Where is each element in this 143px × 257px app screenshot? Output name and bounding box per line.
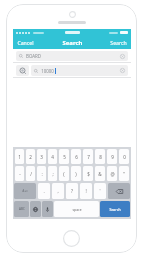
- button[interactable]: !: [80, 183, 92, 199]
- button[interactable]: 4: [48, 149, 57, 164]
- button[interactable]: &: [95, 166, 105, 181]
- button[interactable]: ABC: [14, 201, 29, 217]
- button[interactable]: ?: [66, 183, 78, 199]
- staticText: (: [63, 171, 65, 177]
- staticText: ': [99, 188, 101, 194]
- button[interactable]: ': [94, 183, 106, 199]
- button[interactable]: .: [38, 183, 50, 199]
- button[interactable]: ": [119, 166, 129, 181]
- button[interactable]: (: [59, 166, 69, 181]
- button[interactable]: ): [71, 166, 81, 181]
- staticText: !: [85, 188, 87, 194]
- button[interactable]: 2: [26, 149, 35, 164]
- staticText: 8: [99, 154, 102, 160]
- button[interactable]: Voice input: [42, 201, 53, 217]
- staticText: .: [43, 188, 45, 194]
- button[interactable]: Delete: [108, 183, 130, 199]
- staticText: $: [87, 171, 90, 177]
- staticText: 4: [51, 154, 54, 160]
- button[interactable]: 3: [37, 149, 46, 164]
- staticText: ?: [71, 188, 73, 194]
- staticText: 6: [75, 154, 78, 160]
- staticText: #+=: [22, 189, 28, 193]
- staticText: 0: [123, 154, 126, 160]
- button[interactable]: ,: [52, 183, 64, 199]
- button[interactable]: @: [107, 166, 117, 181]
- staticText: ": [123, 171, 125, 177]
- button[interactable]: Cancel: [17, 36, 34, 49]
- staticText: ;: [52, 171, 54, 177]
- button[interactable]: 5: [59, 149, 69, 164]
- staticText: /: [30, 171, 32, 177]
- staticText: &: [98, 171, 102, 177]
- staticText: space: [72, 207, 82, 212]
- button[interactable]: space: [54, 201, 99, 217]
- staticText: BOARD: [26, 53, 41, 59]
- staticText: 9: [111, 154, 114, 160]
- button[interactable]: Change keyboard language: [30, 201, 41, 217]
- staticText: Search: [62, 39, 83, 47]
- staticText: ,: [57, 188, 59, 194]
- staticText: Cancel: [17, 39, 34, 46]
- button[interactable]: 1: [15, 149, 24, 164]
- staticText: 7: [87, 154, 90, 160]
- button[interactable]: $: [83, 166, 93, 181]
- button[interactable]: /: [26, 166, 35, 181]
- button[interactable]: Clear: [120, 54, 125, 59]
- button[interactable]: :: [37, 166, 46, 181]
- staticText: :: [41, 171, 43, 177]
- button[interactable]: BOARD: [13, 49, 131, 62]
- staticText: 10000: [41, 68, 54, 74]
- button[interactable]: -: [15, 166, 24, 181]
- button[interactable]: 7: [83, 149, 93, 164]
- staticText: 2: [29, 154, 32, 160]
- button[interactable]: 0: [119, 149, 129, 164]
- button[interactable]: Search: [100, 201, 130, 217]
- staticText: Search: [110, 39, 127, 46]
- staticText: Search: [109, 207, 121, 212]
- staticText: 5: [63, 154, 66, 160]
- button[interactable]: Visual search: [16, 65, 29, 76]
- staticText: ABC: [19, 207, 25, 211]
- button[interactable]: 8: [95, 149, 105, 164]
- button[interactable]: 9: [107, 149, 117, 164]
- button[interactable]: Search: [110, 36, 127, 49]
- staticText: 1: [18, 154, 21, 160]
- button[interactable]: 6: [71, 149, 81, 164]
- staticText: ): [75, 171, 77, 177]
- staticText: -: [19, 171, 21, 177]
- button[interactable]: #+=: [14, 183, 36, 199]
- staticText: @: [110, 171, 115, 177]
- staticText: 3: [40, 154, 43, 160]
- button[interactable]: ;: [48, 166, 57, 181]
- button[interactable]: 10000: [34, 65, 125, 76]
- button[interactable]: Clear: [120, 68, 125, 73]
